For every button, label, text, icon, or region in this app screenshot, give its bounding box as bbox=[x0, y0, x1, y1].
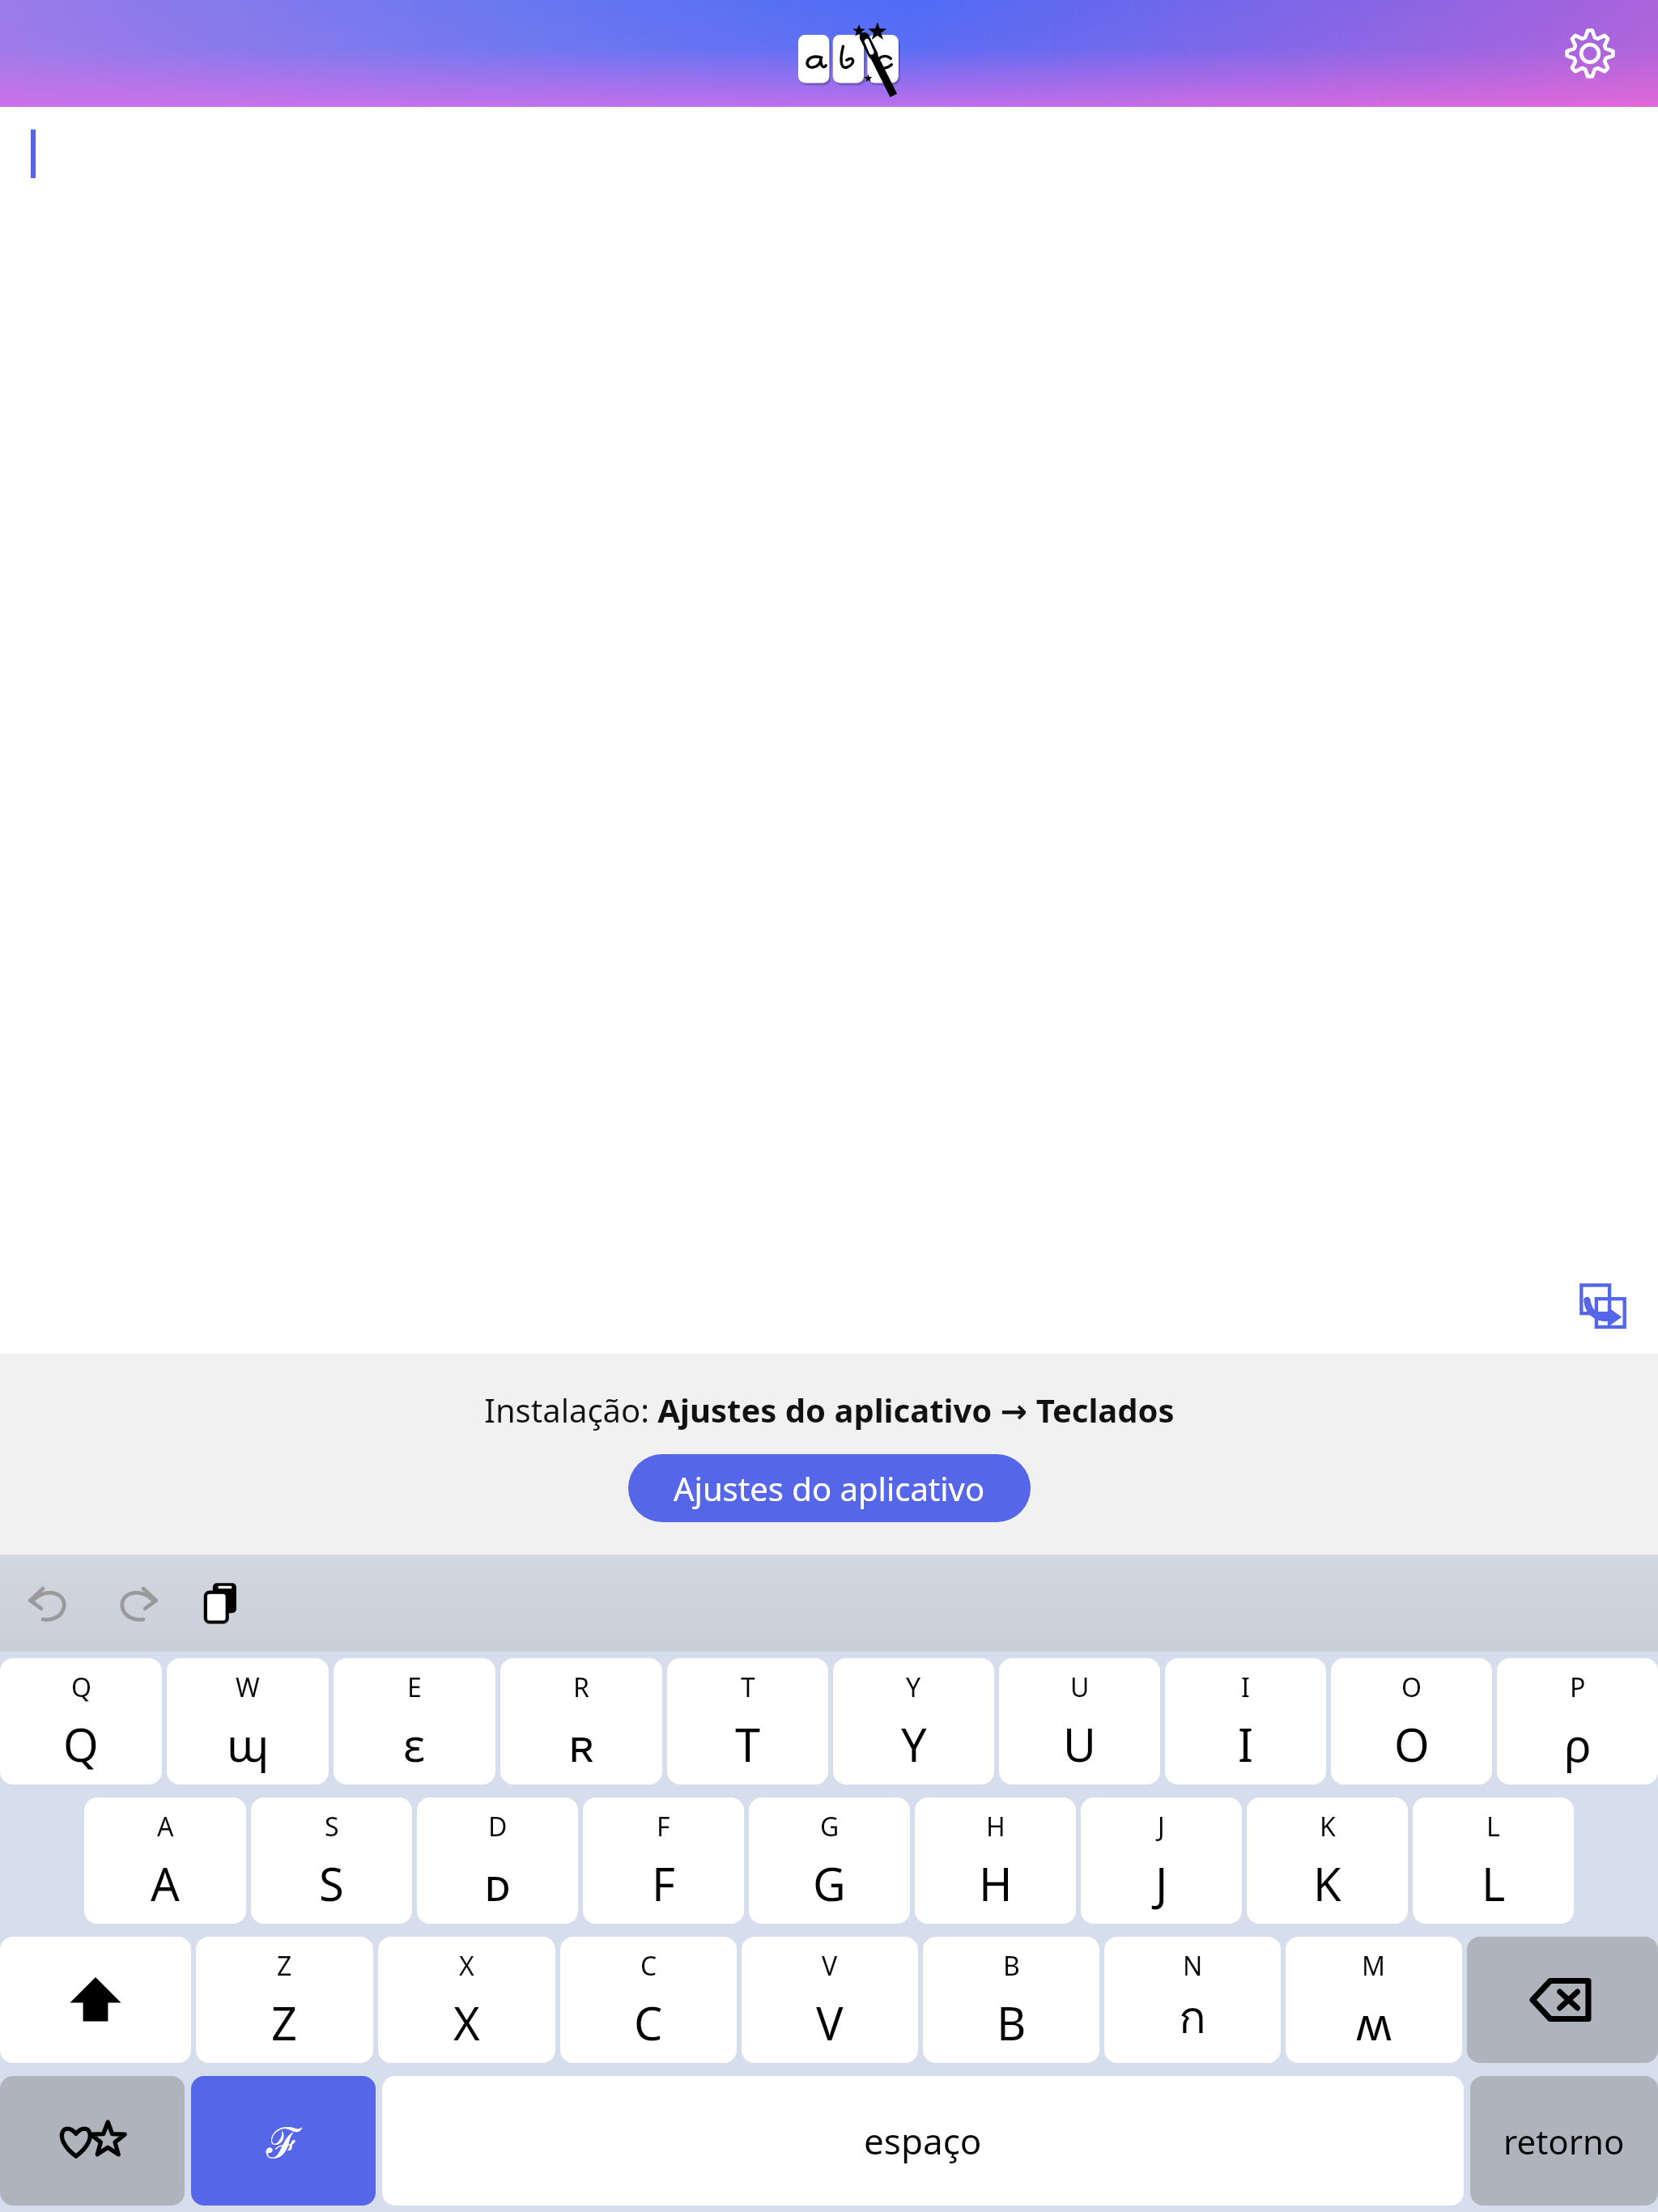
staticText: S bbox=[319, 1853, 344, 1914]
button[interactable]: B bbox=[923, 1937, 1099, 2063]
staticText: R bbox=[573, 1670, 589, 1705]
staticText: ʍ bbox=[1356, 1992, 1392, 2053]
button[interactable]: T bbox=[667, 1658, 828, 1784]
button[interactable]: D bbox=[417, 1797, 578, 1924]
button[interactable]: Q bbox=[0, 1658, 162, 1784]
button[interactable]: retorno bbox=[1470, 2076, 1658, 2206]
staticText: X bbox=[459, 1948, 474, 1984]
button[interactable]: N bbox=[1104, 1937, 1281, 2063]
staticText: H bbox=[979, 1853, 1013, 1914]
staticText: Z bbox=[277, 1948, 292, 1984]
staticText: Y bbox=[901, 1713, 927, 1775]
button[interactable]: Y bbox=[833, 1658, 994, 1784]
button[interactable]: R bbox=[500, 1658, 662, 1784]
staticText: B bbox=[1003, 1948, 1020, 1984]
button[interactable]: Settings bbox=[1551, 15, 1629, 92]
staticText: I bbox=[1238, 1713, 1253, 1775]
staticText: retorno bbox=[1503, 2118, 1625, 2164]
staticText: P bbox=[1570, 1670, 1586, 1705]
staticText: G bbox=[813, 1853, 846, 1914]
staticText: Z bbox=[271, 1992, 298, 2053]
staticText: O bbox=[1394, 1713, 1430, 1775]
button[interactable]: S bbox=[251, 1797, 412, 1924]
button[interactable]: U bbox=[999, 1658, 1160, 1784]
staticText: T bbox=[735, 1713, 761, 1775]
staticText: ʀ bbox=[568, 1713, 594, 1775]
staticText: J bbox=[1155, 1853, 1168, 1914]
button[interactable]: O bbox=[1331, 1658, 1492, 1784]
button[interactable]: A bbox=[84, 1797, 246, 1924]
staticText: O bbox=[1401, 1670, 1422, 1705]
button[interactable]: L bbox=[1413, 1797, 1574, 1924]
button[interactable]: espaço bbox=[382, 2076, 1464, 2206]
button[interactable]: Shift bbox=[0, 1937, 191, 2063]
button[interactable]: Clipboard bbox=[186, 1568, 257, 1639]
button[interactable]: Symbols and emoji bbox=[0, 2076, 185, 2206]
staticText: ℱ bbox=[266, 2112, 301, 2170]
button[interactable]: Backspace bbox=[1467, 1937, 1658, 2063]
button[interactable]: H bbox=[915, 1797, 1076, 1924]
button[interactable]: V bbox=[742, 1937, 918, 2063]
button[interactable]: G bbox=[749, 1797, 910, 1924]
staticText: Ajustes do aplicativo bbox=[674, 1466, 985, 1510]
staticText: K bbox=[1320, 1809, 1336, 1844]
staticText: W bbox=[236, 1670, 260, 1705]
button[interactable]: Undo bbox=[15, 1568, 86, 1639]
staticText: S bbox=[325, 1809, 339, 1844]
button[interactable]: F bbox=[583, 1797, 744, 1924]
staticText: Q bbox=[71, 1670, 91, 1705]
staticText: U bbox=[1070, 1670, 1090, 1705]
staticText: ᴅ bbox=[484, 1853, 512, 1914]
staticText: C bbox=[640, 1948, 657, 1984]
staticText: X bbox=[453, 1992, 480, 2053]
button[interactable]: E bbox=[334, 1658, 495, 1784]
button[interactable]: K bbox=[1247, 1797, 1408, 1924]
button[interactable]: W bbox=[167, 1658, 329, 1784]
button[interactable]: Z bbox=[196, 1937, 373, 2063]
staticText: F bbox=[657, 1809, 670, 1844]
button[interactable]: M bbox=[1286, 1937, 1462, 2063]
staticText: Instalação: Ajustes do aplicativo → Tecl… bbox=[484, 1388, 1175, 1431]
staticText: H bbox=[986, 1809, 1005, 1844]
button[interactable]: X bbox=[378, 1937, 555, 2063]
staticText: T bbox=[741, 1670, 755, 1705]
staticText: Q bbox=[63, 1713, 99, 1775]
button[interactable]: App logo bbox=[748, 15, 910, 96]
staticText: L bbox=[1482, 1853, 1506, 1914]
staticText: N bbox=[1183, 1948, 1203, 1984]
staticText: ρ bbox=[1564, 1713, 1592, 1775]
button[interactable]: P bbox=[1497, 1658, 1658, 1784]
staticText: C bbox=[634, 1992, 663, 2053]
button[interactable]: I bbox=[1165, 1658, 1326, 1784]
staticText: A bbox=[157, 1809, 174, 1844]
button[interactable]: Ajustes do aplicativo bbox=[628, 1454, 1031, 1522]
staticText: U bbox=[1063, 1713, 1096, 1775]
button[interactable]: Copy text bbox=[1572, 1276, 1634, 1338]
button[interactable]: J bbox=[1081, 1797, 1242, 1924]
staticText: ɰ bbox=[227, 1713, 270, 1775]
staticText: A bbox=[151, 1853, 180, 1914]
staticText: F bbox=[652, 1853, 676, 1914]
staticText: J bbox=[1158, 1809, 1165, 1844]
staticText: I bbox=[1241, 1670, 1250, 1705]
staticText: V bbox=[816, 1992, 844, 2053]
staticText: B bbox=[997, 1992, 1027, 2053]
button[interactable]: Font style bbox=[191, 2076, 376, 2206]
staticText: M bbox=[1362, 1948, 1386, 1984]
staticText: ก bbox=[1179, 1981, 1206, 2053]
staticText: K bbox=[1313, 1853, 1341, 1914]
staticText: E bbox=[407, 1670, 422, 1705]
staticText: L bbox=[1486, 1809, 1500, 1844]
staticText: G bbox=[820, 1809, 840, 1844]
staticText: espaço bbox=[864, 2116, 982, 2165]
staticText: Y bbox=[906, 1670, 921, 1705]
staticText: D bbox=[488, 1809, 508, 1844]
button[interactable]: C bbox=[560, 1937, 737, 2063]
button[interactable]: Redo bbox=[100, 1568, 172, 1639]
staticText: ɛ bbox=[403, 1713, 426, 1775]
staticText: V bbox=[822, 1948, 838, 1984]
